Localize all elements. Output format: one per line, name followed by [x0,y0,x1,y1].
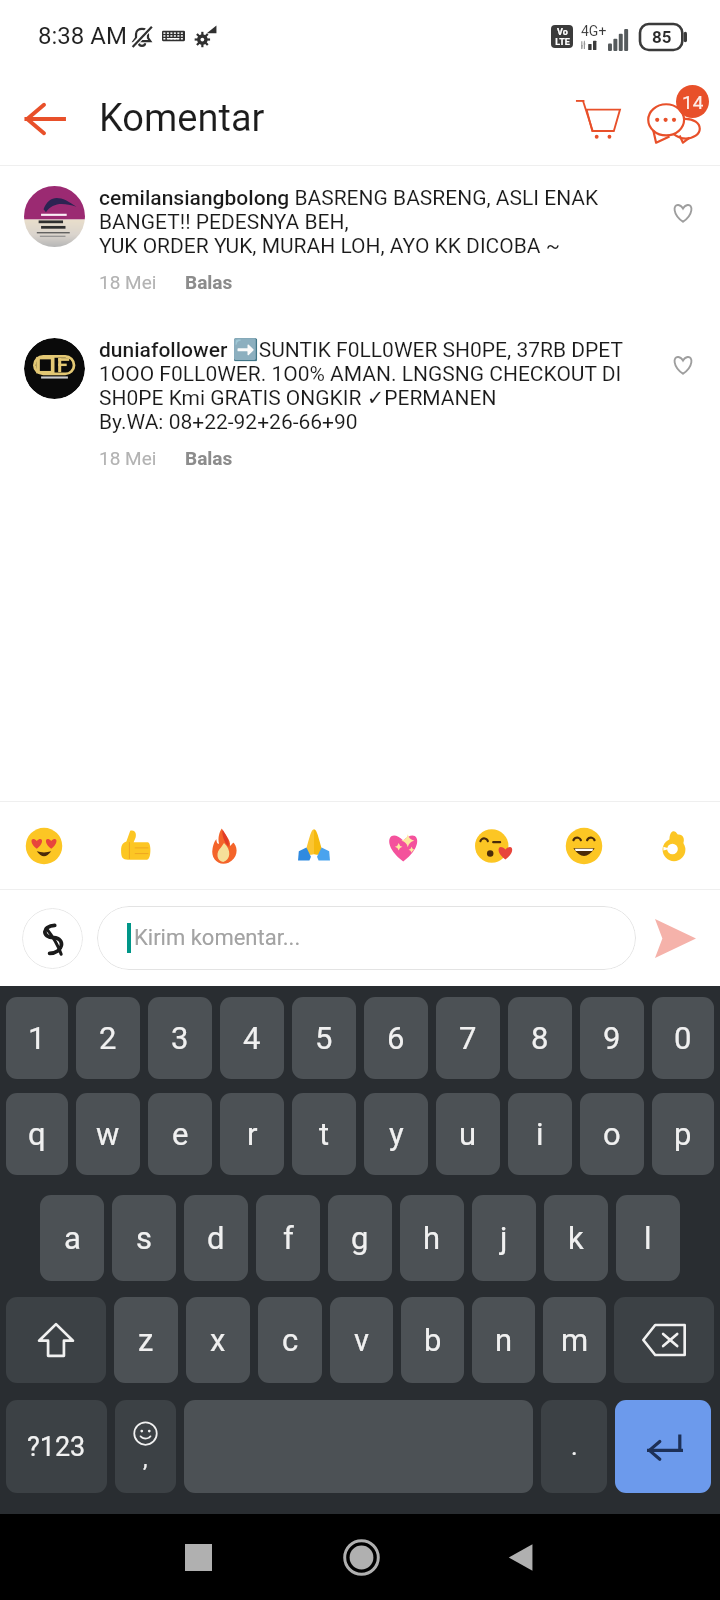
button[interactable]: b [401,1297,464,1383]
button[interactable]: Your profile [22,908,83,969]
button[interactable]: p [652,1093,714,1175]
staticText: b [424,1322,442,1358]
button[interactable]: h [400,1195,464,1281]
staticText: 1 [28,1020,46,1056]
button[interactable]: Balas [185,447,233,469]
button[interactable]: Back [8,83,80,155]
button[interactable]: 0 [652,997,714,1079]
staticText: 18 Mei [99,271,157,293]
staticText: 9 [603,1020,621,1056]
button[interactable]: Emoji reaction [464,816,524,876]
button[interactable]: o [580,1093,644,1175]
button[interactable]: x [186,1297,250,1383]
button[interactable]: k [544,1195,608,1281]
staticText: Komentar [99,96,265,141]
button[interactable]: 4 [220,997,284,1079]
staticText: x [210,1322,226,1358]
button[interactable]: 9 [580,997,644,1079]
staticText: q [28,1116,46,1152]
button[interactable]: ?123 [6,1400,107,1493]
button[interactable]: j [472,1195,536,1281]
button[interactable]: m [543,1297,606,1383]
button[interactable] [614,1297,714,1383]
staticText: e [172,1116,189,1152]
button[interactable]: 3 [148,997,212,1079]
staticText: s [136,1220,152,1256]
staticText: cemilansiangbolong BASRENG BASRENG, ASLI… [99,186,664,258]
button[interactable]: r [220,1093,284,1175]
button[interactable]: v [330,1297,393,1383]
button[interactable]: Emoji reaction [194,816,254,876]
button[interactable]: n [472,1297,535,1383]
staticText: i [536,1116,544,1152]
staticText: 18 Mei [99,447,157,469]
button[interactable]: Emoji reaction [374,816,434,876]
button[interactable]: d [184,1195,248,1281]
button[interactable]: w [76,1093,140,1175]
button[interactable] [6,1297,106,1383]
button[interactable]: Emoji reaction [104,816,164,876]
button[interactable]: Like [664,346,702,384]
button[interactable]: 7 [436,997,500,1079]
staticText: l [644,1220,652,1256]
button[interactable]: , [115,1400,176,1493]
button[interactable]: q [6,1093,68,1175]
staticText: 85 [652,27,672,47]
staticText: m [561,1322,589,1358]
staticText: o [603,1116,621,1152]
button[interactable]: f [256,1195,320,1281]
staticText: 14 [682,91,704,113]
button[interactable]: e [148,1093,212,1175]
staticText: f [283,1220,294,1256]
staticText: 6 [387,1020,405,1056]
button[interactable]: a [40,1195,104,1281]
button[interactable]: 2 [76,997,140,1079]
staticText: d [207,1220,225,1256]
button[interactable]: y [364,1093,428,1175]
button[interactable]: Chat [634,80,712,158]
button[interactable]: i [508,1093,572,1175]
button[interactable]: Emoji reaction [554,816,614,876]
staticText: . [571,1432,578,1461]
button[interactable]: g [328,1195,392,1281]
button[interactable]: 8 [508,997,572,1079]
staticText: v [354,1322,370,1358]
button[interactable]: s [112,1195,176,1281]
button[interactable]: c [258,1297,322,1383]
button[interactable]: l [616,1195,680,1281]
button[interactable]: cemilansiangbolong BASRENG BASRENG, ASLI… [0,166,720,293]
staticText: j [500,1220,508,1256]
button[interactable]: Kirim komentar... [97,906,636,970]
button[interactable]: u [436,1093,500,1175]
staticText: p [674,1116,692,1152]
staticText: Vo LTE [555,27,570,47]
button[interactable]: Balas [185,271,233,293]
button[interactable]: Send [645,908,705,968]
button[interactable]: Recents [166,1525,230,1589]
button[interactable]: Like [664,194,702,232]
staticText: a [64,1220,81,1256]
button[interactable]: Back [489,1525,553,1589]
staticText: g [351,1220,369,1256]
button[interactable]: Emoji reaction [644,816,704,876]
button[interactable]: z [114,1297,178,1383]
staticText: 8:38 AM [38,22,127,50]
button[interactable]: 5 [292,997,356,1079]
staticText: , [143,1446,148,1473]
button[interactable]: duniafollower ➡️SUNTIK F0LL0WER SH0PE, 3… [0,293,720,469]
staticText: k [568,1220,584,1256]
staticText: w [96,1116,120,1152]
staticText: Kirim komentar... [134,925,301,951]
button[interactable]: Enter [615,1400,711,1493]
button[interactable]: Home [329,1525,393,1589]
button[interactable]: 6 [364,997,428,1079]
button[interactable]: . [541,1400,607,1493]
button[interactable]: 1 [6,997,68,1079]
button[interactable]: Emoji reaction [14,816,74,876]
button[interactable]: Cart [562,83,634,155]
staticText: 3 [171,1020,189,1056]
button[interactable]: Emoji reaction [284,816,344,876]
staticText: 0 [674,1020,692,1056]
button[interactable]: t [292,1093,356,1175]
